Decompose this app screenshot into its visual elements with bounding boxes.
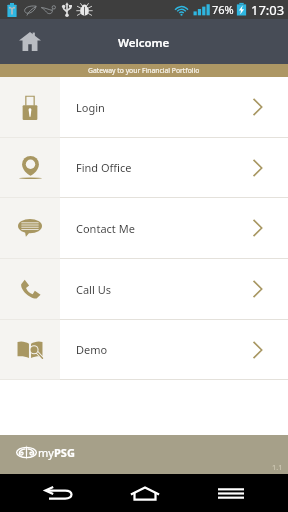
staticText: Find Office [76, 160, 132, 175]
button[interactable]: Back [0, 474, 115, 512]
staticText: Welcome [118, 35, 170, 51]
staticText: PSG [54, 445, 75, 460]
button[interactable]: Call Us [0, 259, 288, 320]
staticText: Demo [76, 342, 108, 357]
staticText: Gateway to your Financial Portfolio [88, 66, 200, 75]
button[interactable]: Contact Me [0, 198, 288, 259]
staticText: 76% [212, 2, 234, 17]
button[interactable]: Find Office [0, 138, 288, 198]
button[interactable]: Home [115, 474, 174, 512]
staticText: Call Us [76, 282, 111, 297]
staticText: 1.1 [272, 462, 283, 472]
staticText: my [38, 445, 54, 460]
staticText: Contact Me [76, 221, 135, 236]
button[interactable]: Menu [174, 474, 288, 512]
button[interactable]: Login [0, 77, 288, 138]
staticText: Login [76, 100, 105, 115]
staticText: 17:03 [251, 1, 285, 19]
button[interactable]: Demo [0, 320, 288, 380]
button[interactable]: Home [0, 19, 60, 64]
